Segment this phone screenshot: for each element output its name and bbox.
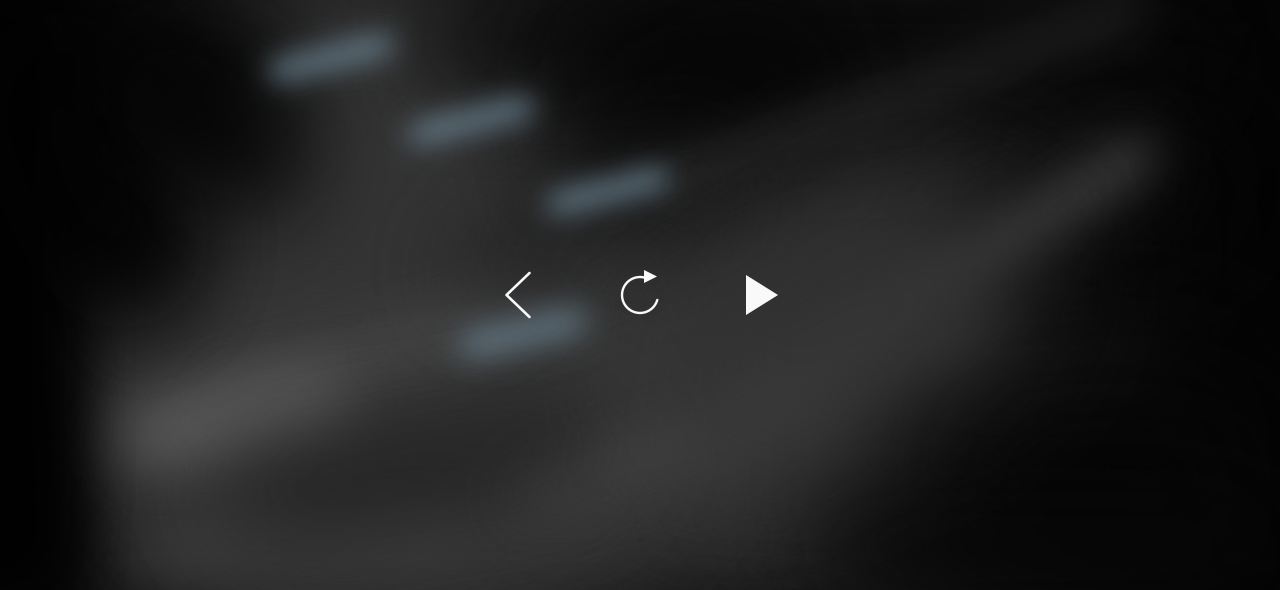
button[interactable]: Replay [579,247,701,343]
button[interactable]: Previous [457,247,579,343]
button[interactable]: Play [701,247,823,343]
